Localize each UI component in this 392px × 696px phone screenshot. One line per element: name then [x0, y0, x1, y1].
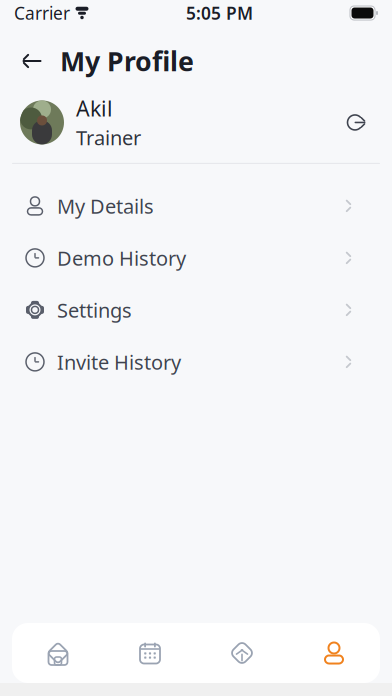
staticText: Demo History	[57, 245, 186, 271]
staticText: My Details	[57, 193, 154, 219]
button[interactable]: Demo History	[0, 232, 392, 284]
staticText: Trainer	[76, 124, 141, 151]
staticText: Invite History	[57, 349, 181, 375]
staticText: 5:05 PM	[186, 1, 253, 24]
button[interactable]: Back	[18, 47, 46, 75]
staticText: Carrier	[14, 1, 70, 24]
button[interactable]: Products	[196, 623, 288, 683]
button[interactable]: Home	[12, 623, 104, 683]
button[interactable]: Log out	[338, 105, 372, 139]
button[interactable]: Calendar	[104, 623, 196, 683]
button[interactable]: Settings	[0, 284, 392, 336]
button[interactable]: Profile	[288, 623, 380, 683]
button[interactable]: Invite History	[0, 336, 392, 388]
staticText: My Profile	[60, 43, 194, 79]
staticText: Akil	[76, 94, 113, 122]
staticText: Settings	[57, 297, 132, 323]
button[interactable]: My Details	[0, 180, 392, 232]
